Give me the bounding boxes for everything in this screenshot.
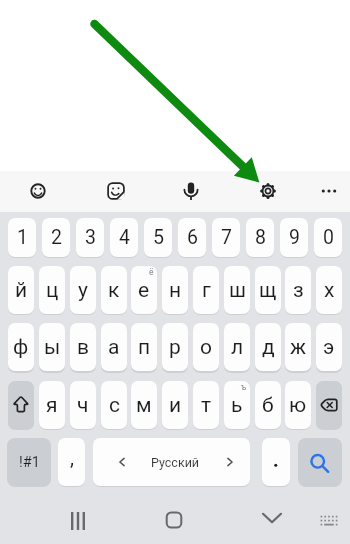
button[interactable]	[20, 173, 56, 209]
staticText: у	[78, 278, 88, 303]
button[interactable]: ,	[58, 438, 85, 486]
staticText: 8	[255, 226, 266, 249]
staticText: с	[109, 393, 120, 418]
button[interactable]: п	[131, 323, 157, 371]
button[interactable]: щ	[255, 266, 281, 314]
button[interactable]: ф	[8, 323, 34, 371]
button[interactable]	[173, 173, 209, 209]
staticText: 5	[153, 226, 164, 249]
staticText: 7	[221, 226, 232, 249]
staticText: г	[202, 278, 211, 303]
button[interactable]: я	[39, 381, 65, 429]
staticText: ё	[149, 267, 154, 277]
staticText: ,	[70, 446, 74, 469]
button[interactable]: в	[70, 323, 96, 371]
button[interactable]: е	[131, 266, 157, 314]
button[interactable]: 9	[280, 218, 308, 257]
button[interactable]: 3	[76, 218, 104, 257]
button[interactable]: с	[101, 381, 127, 429]
staticText: 2	[51, 226, 62, 249]
staticText: ч	[77, 393, 89, 418]
button[interactable]: 7	[212, 218, 240, 257]
staticText: в	[77, 335, 90, 360]
staticText: я	[46, 393, 58, 418]
staticText: т	[201, 393, 212, 418]
button[interactable]: м	[131, 381, 157, 429]
staticText: н	[169, 278, 182, 303]
button[interactable]: к	[101, 266, 127, 314]
button[interactable]: ю	[285, 381, 311, 429]
staticText: о	[200, 335, 212, 360]
staticText: щ	[259, 278, 277, 303]
staticText: з	[293, 278, 304, 303]
button[interactable]	[316, 381, 342, 429]
button[interactable]: 1	[8, 218, 36, 257]
button[interactable]: з	[285, 266, 311, 314]
button[interactable]: 0	[314, 218, 342, 257]
staticText: !#1	[19, 454, 40, 471]
button[interactable]: н	[162, 266, 188, 314]
button[interactable]: и	[162, 381, 188, 429]
staticText: 3	[85, 226, 96, 249]
button[interactable]: ш	[224, 266, 250, 314]
staticText: б	[262, 393, 274, 418]
button[interactable]: 2	[42, 218, 70, 257]
staticText: а	[108, 335, 120, 360]
staticText: Русский	[151, 455, 200, 470]
staticText: 4	[119, 226, 130, 249]
staticText: ш	[229, 278, 246, 303]
button[interactable]	[311, 503, 347, 539]
button[interactable]: Русский	[93, 438, 250, 486]
button[interactable]	[311, 173, 347, 209]
button[interactable]: ж	[285, 323, 311, 371]
staticText: ъ	[241, 382, 247, 392]
button[interactable]: т	[193, 381, 219, 429]
button[interactable]	[250, 173, 286, 209]
staticText: п	[138, 335, 151, 360]
button[interactable]: 6	[178, 218, 206, 257]
button[interactable]	[8, 381, 34, 429]
staticText: л	[231, 335, 244, 360]
button[interactable]	[152, 498, 196, 542]
button[interactable]: г	[193, 266, 219, 314]
button[interactable]: а	[101, 323, 127, 371]
button[interactable]: ч	[70, 381, 96, 429]
staticText: й	[15, 278, 28, 303]
button[interactable]	[98, 173, 134, 209]
button[interactable]: 5	[144, 218, 172, 257]
button[interactable]	[56, 499, 100, 543]
button[interactable]: о	[193, 323, 219, 371]
staticText: и	[169, 393, 182, 418]
button[interactable]: 4	[110, 218, 138, 257]
staticText: д	[262, 335, 275, 360]
button[interactable]: р	[162, 323, 188, 371]
staticText: ь	[231, 393, 243, 418]
staticText: к	[108, 278, 120, 303]
staticText: э	[323, 335, 335, 360]
staticText: р	[169, 335, 181, 360]
staticText: е	[138, 278, 150, 303]
staticText: ю	[289, 393, 307, 418]
button[interactable]: ц	[39, 266, 65, 314]
button[interactable]: д	[255, 323, 281, 371]
staticText: ж	[290, 335, 307, 360]
button[interactable]: ы	[39, 323, 65, 371]
button[interactable]: !#1	[7, 438, 51, 486]
button[interactable]: л	[224, 323, 250, 371]
button[interactable]	[262, 438, 290, 486]
button[interactable]	[298, 438, 342, 486]
button[interactable]: й	[8, 266, 34, 314]
staticText: м	[136, 393, 152, 418]
button[interactable]: у	[70, 266, 96, 314]
staticText: ц	[46, 278, 59, 303]
button[interactable]	[250, 496, 294, 540]
staticText: ф	[13, 335, 29, 360]
button[interactable]: 8	[246, 218, 274, 257]
staticText: 1	[17, 226, 28, 249]
button[interactable]: х	[316, 266, 342, 314]
button[interactable]: б	[255, 381, 281, 429]
button[interactable]: э	[316, 323, 342, 371]
staticText: 6	[187, 226, 198, 249]
button[interactable]: ь	[224, 381, 250, 429]
staticText: х	[324, 278, 335, 303]
